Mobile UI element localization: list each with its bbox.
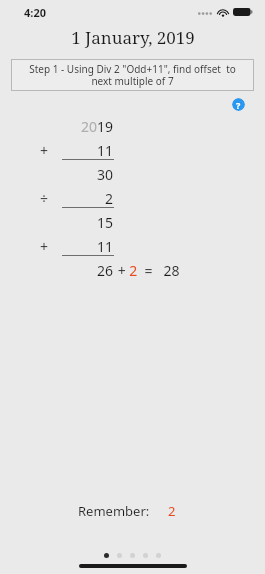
staticText: + <box>40 237 49 256</box>
staticText: ? <box>236 99 241 111</box>
staticText: ÷ <box>40 189 49 208</box>
button[interactable]: Help <box>232 98 245 111</box>
staticText: 2 <box>105 189 114 208</box>
staticText: 4:20 <box>24 5 46 20</box>
staticText: 30 <box>97 165 114 184</box>
button[interactable]: Step 1 - Using Div 2 "Odd+11", find offs… <box>11 59 254 91</box>
staticText: 2019 <box>81 117 114 136</box>
staticText: + 2 = 28 <box>114 261 180 280</box>
staticText: 11 <box>97 141 114 160</box>
staticText: 26 <box>97 261 114 280</box>
staticText: Remember: <box>78 502 150 520</box>
staticText: 15 <box>97 213 114 232</box>
staticText: + <box>40 141 49 160</box>
staticText: 1 January, 2019 <box>71 26 195 49</box>
staticText: 2 <box>168 502 176 520</box>
staticText: Step 1 - Using Div 2 "Odd+11", find offs… <box>29 62 236 88</box>
staticText: 11 <box>97 237 114 256</box>
